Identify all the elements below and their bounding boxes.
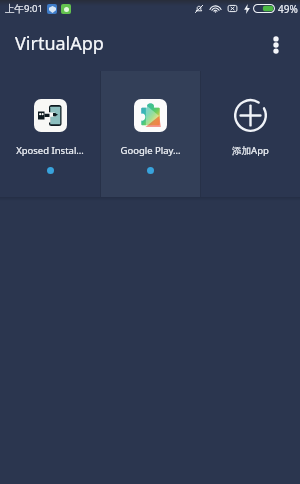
- button[interactable]: 添加App: [201, 71, 300, 197]
- button[interactable]: More options: [256, 25, 296, 65]
- staticText: Google Play…: [120, 144, 181, 157]
- staticText: 添加App: [232, 144, 269, 157]
- button[interactable]: Xposed Instal…: [0, 71, 100, 197]
- staticText: VirtualApp: [15, 31, 104, 56]
- staticText: Xposed Instal…: [16, 144, 84, 157]
- button[interactable]: Google Play…: [101, 71, 200, 197]
- staticText: 上午9:01: [5, 2, 43, 15]
- staticText: 49%: [278, 2, 298, 16]
